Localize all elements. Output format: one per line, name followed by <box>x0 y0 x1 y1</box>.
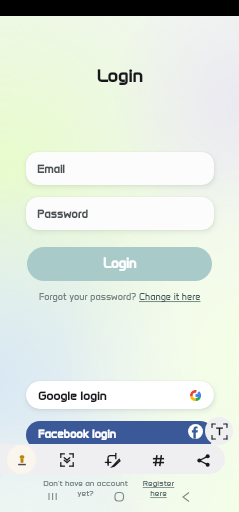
button[interactable]: Google login <box>26 381 214 409</box>
button[interactable]: Change it here <box>139 291 201 302</box>
button[interactable]: Tag <box>146 448 170 472</box>
staticText: Email <box>37 162 65 175</box>
button[interactable]: Share <box>191 448 215 472</box>
staticText: Login <box>103 256 137 272</box>
staticText: Google login <box>38 388 107 403</box>
button[interactable]: Password <box>26 197 214 230</box>
button[interactable]: Select all <box>55 448 79 472</box>
staticText: Password <box>37 207 88 220</box>
button[interactable]: Email <box>26 152 214 185</box>
staticText: Don't have an account yet? <box>35 478 136 498</box>
button[interactable]: Highlight <box>7 445 36 474</box>
button[interactable]: Facebook login <box>26 421 214 449</box>
staticText: Forgot your password? <box>39 291 139 302</box>
staticText: Facebook login <box>38 427 117 440</box>
button[interactable]: Select text <box>205 417 233 445</box>
staticText: Login <box>0 65 239 87</box>
button[interactable]: Add note <box>100 448 124 472</box>
button[interactable]: Register here <box>136 478 181 498</box>
button[interactable]: Login <box>27 247 212 281</box>
